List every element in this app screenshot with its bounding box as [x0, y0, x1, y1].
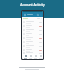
button[interactable]	[22, 28, 43, 32]
button[interactable]	[22, 52, 43, 54]
button[interactable]	[23, 18, 28, 19]
button[interactable]	[22, 36, 43, 40]
button[interactable]: Profile	[38, 54, 43, 59]
staticText: Account Activity	[20, 3, 45, 7]
button[interactable]	[22, 32, 43, 36]
button[interactable]: Activity	[28, 54, 33, 59]
button[interactable]	[22, 44, 43, 48]
button[interactable]	[22, 40, 43, 44]
button[interactable]: Cards	[33, 54, 38, 59]
button[interactable]	[22, 20, 43, 24]
button[interactable]	[22, 48, 43, 52]
button[interactable]	[22, 24, 43, 28]
button[interactable]: Menu	[23, 13, 26, 16]
button[interactable]: Home	[22, 54, 28, 59]
